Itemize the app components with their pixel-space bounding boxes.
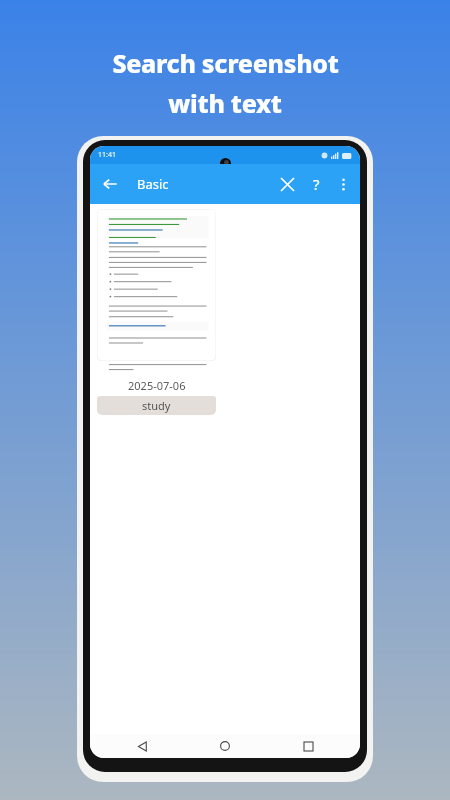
staticText: with text: [168, 86, 282, 120]
staticText: Basic: [137, 175, 169, 193]
button[interactable]: 2025-07-06: [97, 209, 216, 415]
staticText: study: [142, 398, 171, 413]
button[interactable]: Home: [215, 736, 235, 756]
staticText: ?: [313, 174, 320, 194]
staticText: 2025-07-06: [128, 378, 186, 393]
staticText: Search screenshot: [112, 46, 339, 80]
button[interactable]: More options: [330, 171, 356, 197]
button[interactable]: Back: [95, 169, 125, 199]
button[interactable]: Back: [132, 736, 152, 756]
button[interactable]: Close: [272, 169, 302, 199]
button[interactable]: Recents: [298, 736, 318, 756]
staticText: 11:41: [98, 150, 116, 160]
button[interactable]: study: [97, 396, 216, 415]
button[interactable]: Help: [302, 170, 330, 198]
